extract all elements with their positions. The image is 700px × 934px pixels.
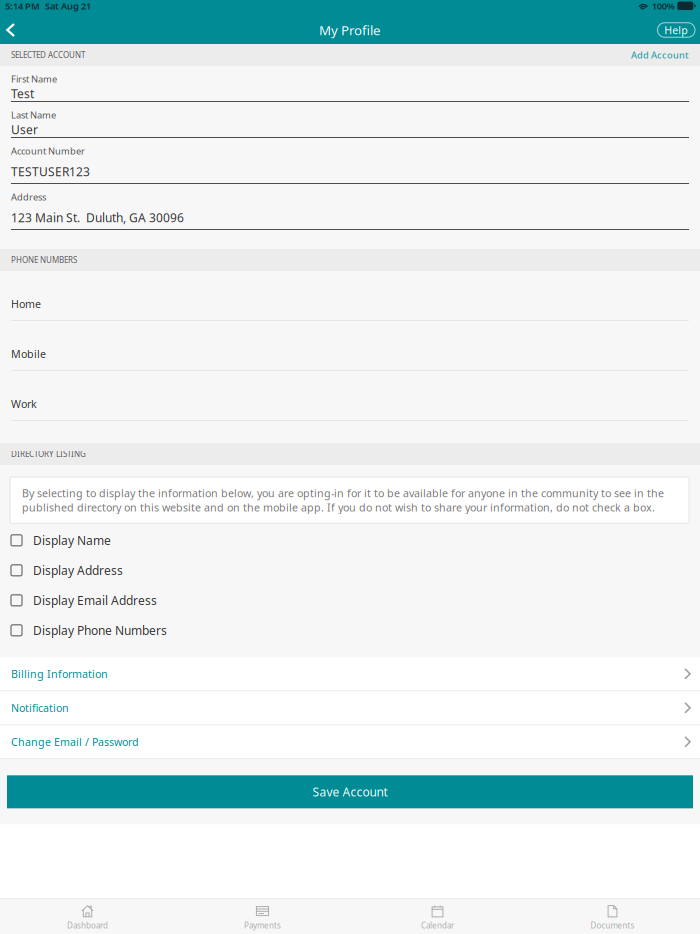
staticText: Display Email Address xyxy=(33,592,157,608)
button[interactable]: Payments xyxy=(175,899,350,934)
staticText: PHONE NUMBERS xyxy=(11,255,77,265)
staticText: Display Phone Numbers xyxy=(33,622,167,638)
staticText: First Name xyxy=(11,73,57,85)
button[interactable]: Documents xyxy=(525,899,700,934)
staticText: TESTUSER123 xyxy=(11,163,90,179)
staticText: Save Account xyxy=(312,784,387,800)
staticText: Add Account xyxy=(631,49,689,61)
button[interactable]: Back xyxy=(0,17,22,43)
staticText: Calendar xyxy=(421,920,454,931)
staticText: Last Name xyxy=(11,109,56,121)
staticText: Documents xyxy=(590,920,634,931)
staticText: 5:14 PM xyxy=(5,0,40,12)
button[interactable]: Display Phone Numbers xyxy=(0,615,700,645)
button[interactable]: Display Address xyxy=(0,555,700,585)
staticText: Change Email / Password xyxy=(11,735,139,749)
staticText: Help xyxy=(664,23,688,37)
staticText: By selecting to display the information … xyxy=(22,486,664,514)
staticText: Display Name xyxy=(33,532,111,548)
staticText: 100% xyxy=(652,0,675,12)
staticText: Work xyxy=(11,397,37,411)
button[interactable]: Change Email / Password xyxy=(0,725,700,759)
staticText: Account Number xyxy=(11,145,85,157)
button[interactable]: Add Account xyxy=(631,49,689,61)
button[interactable]: Display Name xyxy=(0,525,700,555)
button[interactable]: Display Email Address xyxy=(0,585,700,615)
staticText: 123 Main St. Duluth, GA 30096 xyxy=(11,209,184,225)
staticText: Test xyxy=(11,85,34,101)
button[interactable]: Dashboard xyxy=(0,899,175,934)
staticText: My Profile xyxy=(319,21,381,39)
button[interactable]: Notification xyxy=(0,691,700,725)
staticText: Home xyxy=(11,297,41,311)
staticText: Mobile xyxy=(11,347,46,361)
staticText: Notification xyxy=(11,701,69,715)
staticText: Dashboard xyxy=(67,920,108,931)
staticText: Billing Information xyxy=(11,667,108,681)
staticText: SELECTED ACCOUNT xyxy=(11,50,85,60)
button[interactable]: Calendar xyxy=(350,899,525,934)
staticText: User xyxy=(11,121,38,137)
button[interactable]: Help xyxy=(657,23,695,37)
staticText: DIRECTORY LISTING xyxy=(11,449,86,459)
staticText: Payments xyxy=(244,920,281,931)
staticText: Sat Aug 21 xyxy=(45,0,91,12)
staticText: Display Address xyxy=(33,562,123,578)
button[interactable]: Save Account xyxy=(7,775,693,808)
button[interactable]: Billing Information xyxy=(0,657,700,691)
staticText: Address xyxy=(11,191,46,203)
